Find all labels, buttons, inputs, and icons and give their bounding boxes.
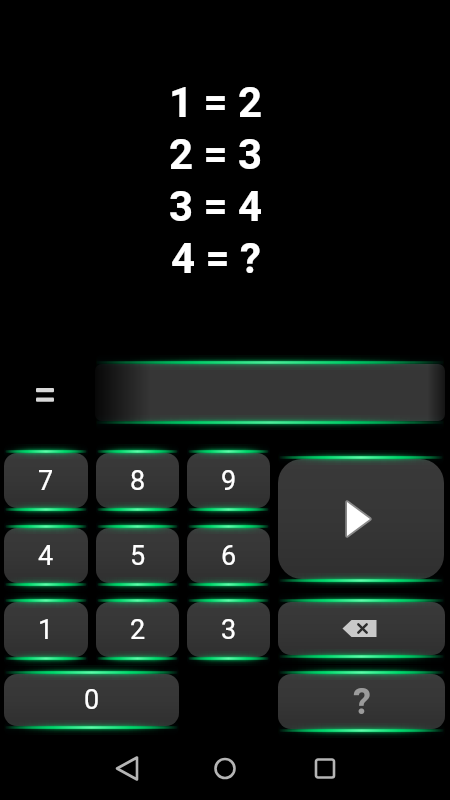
button[interactable] xyxy=(81,350,450,436)
button[interactable]: 8 xyxy=(82,439,193,522)
button[interactable]: 0 xyxy=(0,660,193,740)
staticText: 6 xyxy=(221,540,237,572)
staticText: 1 = 2 xyxy=(169,78,263,127)
staticText: 3 xyxy=(221,614,237,646)
button[interactable]: 7 xyxy=(0,439,102,522)
staticText: 4 xyxy=(38,540,54,572)
button[interactable] xyxy=(103,744,151,792)
button[interactable]: 3 xyxy=(173,588,284,671)
staticText: 9 xyxy=(221,465,237,497)
staticText: 2 = 3 xyxy=(169,130,263,179)
staticText: 0 xyxy=(84,684,100,716)
staticText: 7 xyxy=(38,465,54,497)
staticText: 2 xyxy=(130,614,146,646)
staticText: 3 = 4 xyxy=(169,182,263,231)
button[interactable] xyxy=(264,445,450,593)
button[interactable]: 5 xyxy=(82,514,193,597)
button[interactable] xyxy=(301,744,349,792)
button[interactable]: 6 xyxy=(173,514,284,597)
button[interactable] xyxy=(264,588,450,669)
button[interactable]: 4 xyxy=(0,514,102,597)
staticText: ? xyxy=(353,681,371,723)
button[interactable] xyxy=(201,744,249,792)
button[interactable]: 9 xyxy=(173,439,284,522)
staticText: 1 xyxy=(38,614,54,646)
button[interactable]: 2 xyxy=(82,588,193,671)
staticText: 4 = ? xyxy=(171,234,261,283)
button[interactable]: 1 xyxy=(0,588,102,671)
staticText: 5 xyxy=(130,540,146,572)
button[interactable]: ? xyxy=(264,660,450,743)
staticText: 8 xyxy=(130,465,146,497)
